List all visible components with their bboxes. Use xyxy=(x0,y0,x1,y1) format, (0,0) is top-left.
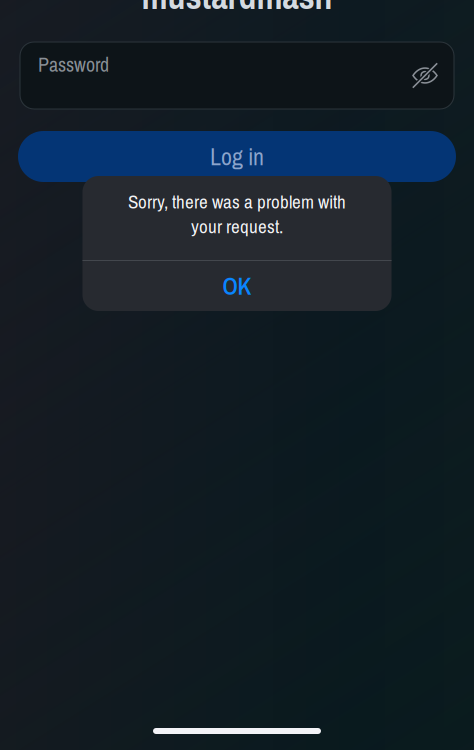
staticText: Log in xyxy=(210,140,264,173)
staticText: your request. xyxy=(191,213,283,239)
staticText: Password xyxy=(38,51,109,78)
staticText: Sorry, there was a problem with xyxy=(128,189,346,214)
staticText: OK xyxy=(222,270,251,302)
button[interactable]: OK xyxy=(82,261,391,311)
button[interactable]: Log in xyxy=(18,131,456,182)
button[interactable]: Password xyxy=(20,42,454,109)
staticText: mustardmash xyxy=(141,0,332,20)
